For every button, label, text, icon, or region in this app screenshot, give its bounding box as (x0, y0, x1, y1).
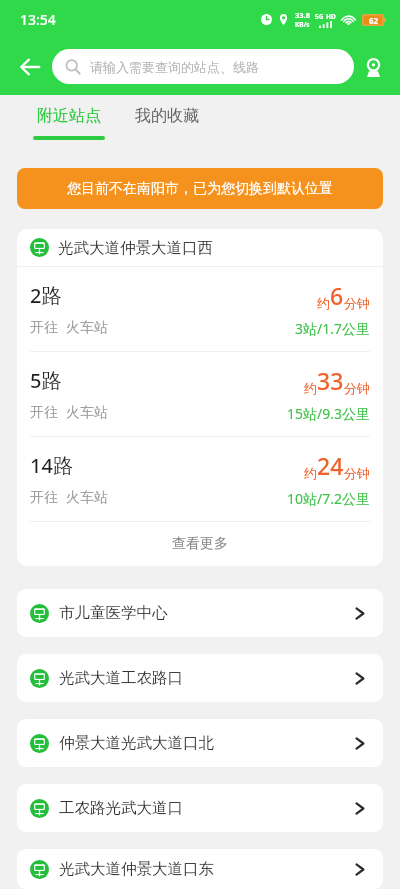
staticText: 约 (317, 295, 330, 311)
staticText: 光武大道工农路口 (59, 668, 352, 688)
button[interactable]: My location (354, 48, 392, 86)
staticText: 14路 (30, 452, 73, 479)
button[interactable]: Back (8, 45, 52, 89)
staticText: 火车站 (66, 319, 108, 337)
button[interactable]: 工农路光武大道口 (17, 784, 383, 832)
button[interactable]: 光武大道工农路口 (17, 654, 383, 702)
staticText: 附近站点 (37, 106, 101, 126)
staticText: KB/s (295, 20, 310, 29)
button[interactable]: 市儿童医学中心 (17, 589, 383, 637)
staticText: 火车站 (66, 489, 108, 507)
staticText: 火车站 (66, 404, 108, 422)
staticText: 约 (304, 465, 317, 481)
staticText: 10站/7.2公里 (287, 489, 370, 508)
button[interactable]: 14路 (17, 437, 383, 521)
staticText: 33 (317, 365, 344, 396)
staticText: 24 (317, 450, 344, 481)
staticText: 33.8 (295, 10, 310, 20)
staticText: 查看更多 (172, 535, 228, 553)
staticText: 光武大道仲景大道口东 (59, 859, 352, 879)
button[interactable]: 仲景大道光武大道口北 (17, 719, 383, 767)
staticText: 开往 (30, 489, 58, 507)
button[interactable]: 光武大道仲景大道口西 (17, 229, 383, 266)
staticText: HD (326, 12, 336, 21)
staticText: 5G (315, 12, 324, 21)
button[interactable]: 我的收藏 (133, 103, 201, 129)
staticText: 分钟 (344, 465, 370, 481)
staticText: 我的收藏 (135, 106, 199, 126)
staticText: 3站/1.7公里 (295, 319, 370, 338)
staticText: 开往 (30, 319, 58, 337)
staticText: 62 (369, 15, 379, 26)
staticText: 5路 (30, 367, 62, 394)
button[interactable]: 5路 (17, 352, 383, 436)
staticText: 工农路光武大道口 (59, 798, 352, 818)
staticText: 仲景大道光武大道口北 (59, 733, 352, 753)
staticText: 分钟 (344, 380, 370, 396)
staticText: 您目前不在南阳市，已为您切换到默认位置 (67, 180, 333, 198)
staticText: 请输入需要查询的站点、线路 (90, 59, 259, 75)
staticText: 13:54 (20, 10, 56, 29)
button[interactable]: 2路 (17, 267, 383, 351)
button[interactable]: 附近站点 (31, 103, 107, 143)
staticText: 约 (304, 380, 317, 396)
button[interactable]: 请输入需要查询的站点、线路 (52, 49, 354, 84)
staticText: 2路 (30, 282, 62, 309)
staticText: 市儿童医学中心 (59, 603, 352, 623)
staticText: 分钟 (344, 295, 370, 311)
staticText: 开往 (30, 404, 58, 422)
button[interactable]: 光武大道仲景大道口东 (17, 849, 383, 889)
staticText: 光武大道仲景大道口西 (58, 238, 213, 258)
staticText: 15站/9.3公里 (287, 404, 370, 423)
button[interactable]: 查看更多 (17, 522, 383, 566)
staticText: 6 (330, 280, 344, 311)
button[interactable]: 您目前不在南阳市，已为您切换到默认位置 (17, 168, 383, 209)
